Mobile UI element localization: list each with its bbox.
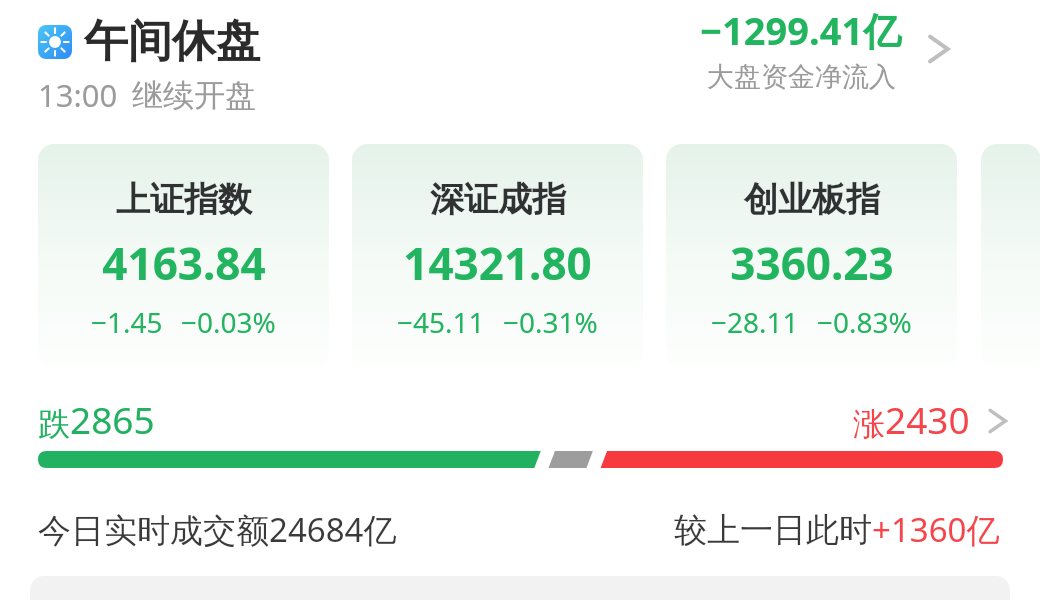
staticText: 较上一日此时 (674, 509, 872, 551)
staticText: −0.31% (503, 303, 598, 341)
staticText: 上证指数 (116, 178, 252, 221)
staticText: 创业板指 (744, 178, 880, 221)
staticText: 涨 (853, 404, 885, 444)
staticText: −0.03% (181, 303, 276, 341)
staticText: 今日实时成交额24684亿 (38, 507, 397, 552)
button[interactable]: 深证成指 (352, 144, 643, 368)
staticText: 2430 (885, 394, 970, 444)
staticText: 深证成指 (430, 178, 566, 221)
other: 涨跌家数详情 (978, 402, 1016, 440)
button[interactable]: −1299.41亿 (700, 4, 960, 94)
button[interactable] (981, 144, 1040, 368)
other: 资金流向详情 (916, 27, 960, 71)
staticText: −45.11 (397, 303, 485, 341)
staticText: 大盘资金净流入 (707, 60, 896, 94)
staticText: −28.11 (711, 303, 799, 341)
button[interactable]: 上证指数 (38, 144, 329, 368)
staticText: 14321.80 (403, 233, 592, 293)
staticText: 继续开盘 (132, 76, 256, 115)
staticText: −1299.41亿 (700, 4, 902, 56)
staticText: +1360亿 (872, 507, 1000, 552)
staticText: 3360.23 (730, 233, 894, 293)
staticText: 午间休盘 (84, 14, 260, 69)
staticText: −1.45 (91, 303, 163, 341)
staticText: 13:00 (38, 74, 118, 116)
staticText: 4163.84 (102, 233, 266, 293)
button[interactable]: 午间休盘 (38, 14, 260, 69)
button[interactable]: 创业板指 (666, 144, 957, 368)
staticText: −0.83% (817, 303, 912, 341)
button[interactable]: 跌 (0, 392, 1040, 484)
staticText: 跌 (38, 404, 70, 444)
staticText: 2865 (70, 394, 155, 444)
